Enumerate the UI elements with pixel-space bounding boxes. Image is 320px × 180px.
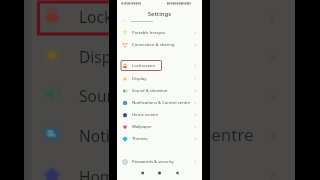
staticText: Sound & vibration: [132, 88, 168, 94]
button[interactable]: Passwords & security: [117, 157, 202, 167]
staticText: Settings: [117, 10, 202, 18]
button[interactable]: Lock screen: [117, 61, 202, 71]
staticText: Notifications & Control centre: [132, 100, 191, 106]
staticText: Themes: [132, 136, 148, 142]
button[interactable]: Portable hotspot: [117, 28, 202, 38]
button[interactable]: Display: [117, 74, 202, 84]
staticText: Displ: [79, 46, 116, 67]
staticText: Display: [132, 76, 147, 82]
button[interactable]: Connection & sharing: [117, 40, 202, 50]
staticText: Lock: [79, 6, 113, 27]
button[interactable]: [117, 17, 202, 25]
staticText: centre: [203, 123, 254, 146]
staticText: Passwords & security: [132, 159, 174, 165]
staticText: Soun: [79, 85, 117, 106]
staticText: Connection & sharing: [132, 42, 175, 48]
staticText: Lock screen: [132, 63, 156, 69]
staticText: Notifi: [79, 125, 120, 146]
button[interactable]: Themes: [117, 134, 202, 144]
button[interactable]: Sound & vibration: [117, 86, 202, 96]
staticText: Portable hotspot: [132, 30, 166, 36]
button[interactable]: Wallpaper: [117, 122, 202, 132]
staticText: Home: [79, 166, 124, 180]
button[interactable]: Home screen: [117, 110, 202, 120]
button[interactable]: Notifications & Control centre: [117, 98, 202, 108]
staticText: Home screen: [132, 112, 158, 118]
staticText: Wallpaper: [132, 124, 152, 130]
